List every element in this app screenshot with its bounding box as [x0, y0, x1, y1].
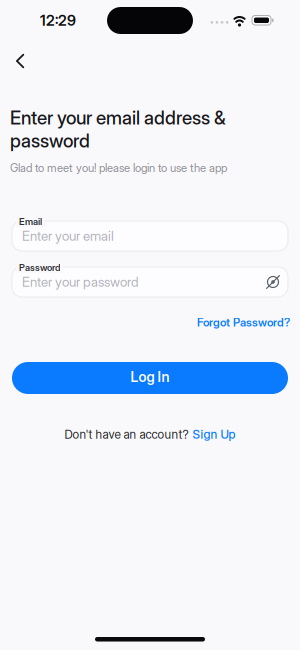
staticText: Glad to meet you! please login to use th… — [10, 161, 227, 175]
staticText: Forgot Password? — [197, 316, 290, 329]
staticText: Enter your email — [22, 228, 114, 244]
button[interactable]: Back — [9, 48, 30, 74]
staticText: Enter your email address & — [10, 106, 226, 129]
staticText: Password — [19, 262, 60, 273]
staticText: password — [10, 129, 90, 152]
staticText: Log In — [130, 368, 169, 385]
button[interactable]: Log In — [12, 362, 288, 394]
staticText: Sign Up — [192, 427, 235, 441]
staticText: Email — [19, 216, 42, 227]
staticText: Enter your password — [22, 274, 139, 290]
staticText: Don't have an account? — [64, 427, 188, 441]
button[interactable]: Sign Up — [192, 427, 235, 441]
button[interactable]: Forgot Password? — [195, 314, 292, 331]
button[interactable]: Show password — [265, 274, 281, 290]
staticText: 12:29 — [40, 12, 76, 29]
